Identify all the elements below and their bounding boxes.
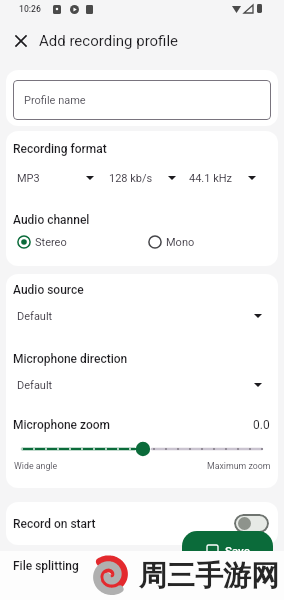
button[interactable]: Profile name (13, 80, 271, 120)
staticText: Mono (166, 236, 195, 249)
staticText: 128 kb/s (109, 172, 153, 185)
staticText: Profile name (24, 94, 86, 107)
staticText: Microphone direction (13, 352, 128, 366)
button[interactable]: Mono (148, 233, 195, 251)
staticText: Maximum zoom (207, 461, 271, 471)
button[interactable]: 128 kb/s (109, 170, 278, 186)
staticText: Default (17, 379, 53, 392)
staticText: File splitting (13, 559, 79, 573)
staticText: Microphone zoom (13, 418, 111, 432)
button[interactable]: Microphone zoom slider (16, 441, 268, 457)
staticText: Audio source (13, 283, 84, 297)
staticText: Stereo (35, 236, 67, 249)
button[interactable]: Save (182, 531, 273, 571)
staticText: Save (225, 544, 250, 557)
button[interactable]: Record on start toggle (234, 514, 269, 533)
staticText: Recording format (13, 142, 107, 156)
button[interactable]: 44.1 kHz (189, 170, 278, 186)
staticText: Audio channel (13, 213, 90, 227)
button[interactable]: Record on start (6, 502, 278, 545)
staticText: Add recording profile (39, 32, 179, 50)
staticText: Default (17, 310, 53, 323)
button[interactable] (6, 552, 278, 595)
staticText: 周三手游网 (139, 558, 279, 593)
staticText: MP3 (17, 172, 40, 185)
staticText: 10:26 (19, 4, 41, 14)
staticText: Wide angle (14, 461, 58, 471)
staticText: Record on start (13, 517, 96, 531)
button[interactable]: Default (13, 376, 271, 394)
button[interactable]: MP3 (17, 170, 278, 186)
staticText: 44.1 kHz (189, 172, 233, 185)
button[interactable]: Close (9, 29, 32, 52)
button[interactable]: Stereo (17, 233, 67, 251)
button[interactable]: Default (13, 307, 271, 325)
staticText: 0.0 (253, 418, 270, 432)
